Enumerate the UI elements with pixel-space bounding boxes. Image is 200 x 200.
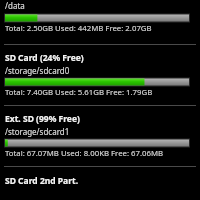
staticText: /storage/sdcard0: [5, 65, 70, 76]
staticText: Total: 7.40GB Used: 5.61GB Free: 1.79GB: [5, 87, 153, 98]
staticText: Total: 2.50GB Used: 442MB Free: 2.07GB: [5, 23, 152, 34]
staticText: /data: [5, 0, 25, 11]
staticText: Total: 67.07MB Used: 8.00KB Free: 67.06M…: [5, 148, 164, 159]
staticText: Ext. SD (99% Free): [5, 113, 80, 125]
button[interactable]: SD Card (24% Free): [0, 45, 200, 106]
button[interactable]: /data: [0, 0, 200, 45]
button[interactable]: Ext. SD (99% Free): [0, 106, 200, 167]
staticText: /storage/sdcard1: [5, 126, 70, 137]
button[interactable]: SD Card 2nd Part.: [0, 167, 200, 187]
staticText: SD Card 2nd Part.: [5, 175, 79, 187]
staticText: SD Card (24% Free): [5, 52, 84, 64]
